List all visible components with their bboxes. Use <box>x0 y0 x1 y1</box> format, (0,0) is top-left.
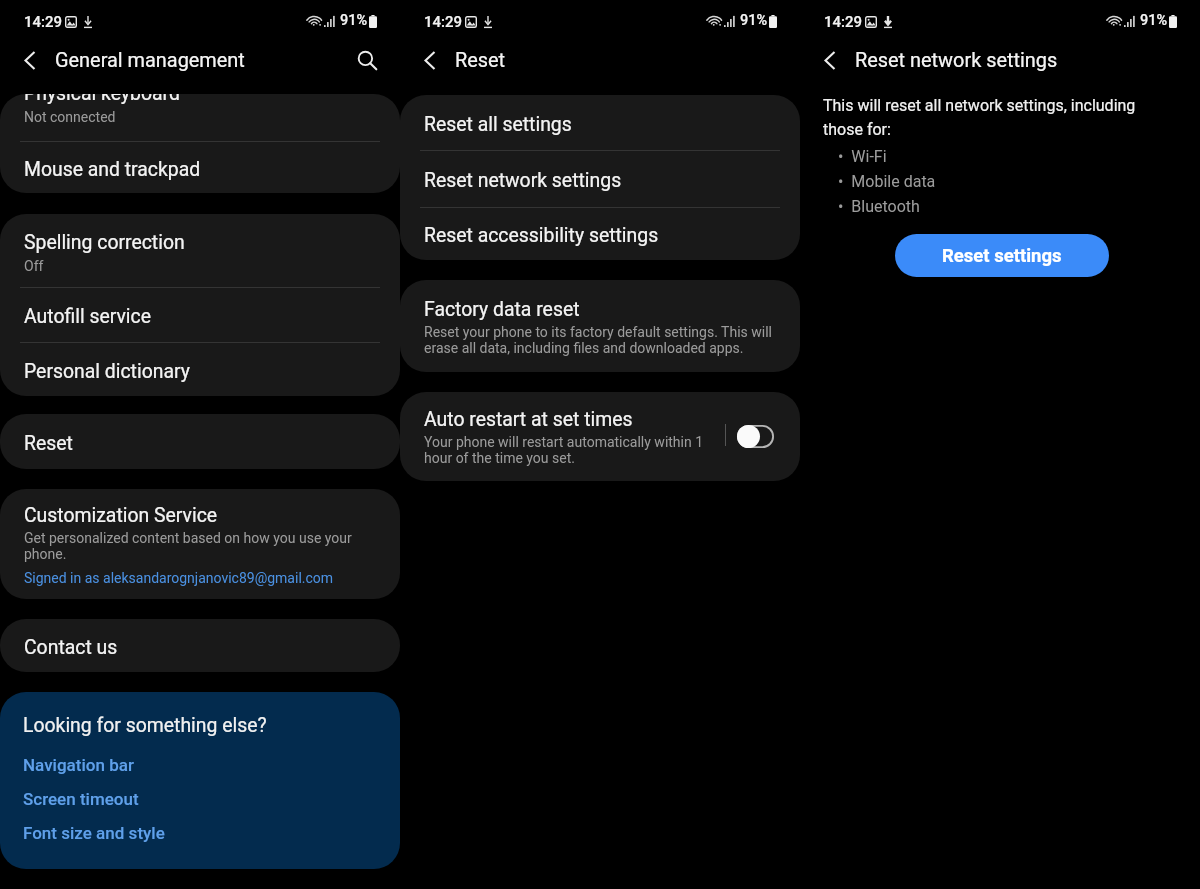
staticText: Reset accessibility settings <box>424 224 659 247</box>
button[interactable]: Navigation bar <box>0 748 400 782</box>
staticText: Reset settings <box>942 245 1062 267</box>
staticText: Autofill service <box>24 305 152 328</box>
staticText: 14:29 <box>24 13 63 31</box>
button[interactable]: Mouse and trackpad <box>0 142 400 193</box>
staticText: Reset network settings <box>855 49 1058 72</box>
button[interactable]: Screen timeout <box>0 782 400 816</box>
staticText: Off <box>24 258 44 274</box>
staticText: Get personalized content based on how yo… <box>24 530 358 562</box>
staticText: Font size and style <box>23 823 165 843</box>
button[interactable]: Navigate up <box>17 47 43 73</box>
button[interactable]: Font size and style <box>0 816 400 850</box>
staticText: Signed in as aleksandarognjanovic89@gmai… <box>24 570 334 586</box>
staticText: Contact us <box>24 636 118 659</box>
staticText: Customization Service <box>24 504 218 527</box>
staticText: Not connected <box>24 109 116 125</box>
staticText: Screen timeout <box>23 789 139 809</box>
button[interactable]: Reset accessibility settings <box>400 208 800 260</box>
staticText: Personal dictionary <box>24 360 190 383</box>
button[interactable]: Spelling correction <box>0 214 400 287</box>
staticText: Mouse and trackpad <box>24 158 201 181</box>
button[interactable]: Reset <box>0 414 400 469</box>
staticText: General management <box>55 49 245 72</box>
staticText: • Bluetooth <box>838 197 920 216</box>
button[interactable]: Customization Service <box>0 489 400 599</box>
staticText: 91% <box>740 12 768 29</box>
staticText: Your phone will restart automatically wi… <box>424 434 724 466</box>
button[interactable]: Search <box>354 47 380 73</box>
staticText: 14:29 <box>424 13 463 31</box>
button[interactable]: Personal dictionary <box>0 343 400 396</box>
button[interactable]: Navigate up <box>417 47 443 73</box>
staticText: 14:29 <box>824 13 863 31</box>
staticText: This will reset all network settings, in… <box>823 96 1157 139</box>
staticText: • Wi-Fi <box>838 147 887 166</box>
button[interactable]: Auto restart at set times <box>400 392 726 481</box>
staticText: Looking for something else? <box>23 714 267 737</box>
staticText: Auto restart at set times <box>424 408 633 431</box>
button[interactable]: Reset settings <box>895 234 1109 277</box>
staticText: 91% <box>1140 12 1168 29</box>
button[interactable]: Reset network settings <box>400 151 800 207</box>
button[interactable]: Reset all settings <box>400 95 800 150</box>
button[interactable]: Navigate up <box>817 47 843 73</box>
button[interactable]: Physical keyboard <box>0 94 400 139</box>
button[interactable]: Auto restart at set times, off <box>726 392 785 481</box>
staticText: Spelling correction <box>24 231 185 254</box>
button[interactable]: Factory data reset <box>400 280 800 372</box>
staticText: Navigation bar <box>23 755 134 775</box>
button[interactable]: Autofill service <box>0 288 400 342</box>
staticText: Factory data reset <box>424 298 580 321</box>
staticText: Reset network settings <box>424 169 622 192</box>
staticText: Reset <box>24 432 73 455</box>
staticText: 91% <box>340 12 368 29</box>
staticText: Physical keyboard <box>24 94 180 105</box>
staticText: Reset your phone to its factory default … <box>424 324 780 356</box>
button[interactable]: Contact us <box>0 619 400 672</box>
staticText: • Mobile data <box>838 172 936 191</box>
staticText: Reset <box>455 49 506 72</box>
staticText: Reset all settings <box>424 113 572 136</box>
